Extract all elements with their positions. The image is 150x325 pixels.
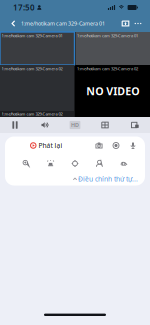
button[interactable]: 1:me/hotikam cam 329-Camera 02 [0,65,74,117]
button[interactable]: Grid layout [90,117,120,133]
staticText: 17:50 [13,2,35,13]
button[interactable]: Stream quality [60,117,90,133]
button[interactable]: NO VIDEO [75,65,150,117]
staticText: NO VIDEO [86,84,139,98]
staticText: 1:me/hotikam cam 329-Camera 02 [1,66,62,71]
button[interactable]: Mute [30,117,60,133]
button[interactable]: Phát lại [30,138,62,152]
button[interactable]: Picture in picture [120,117,150,133]
button[interactable]: 1:me/hotikam cam 329-Camera 01 [0,32,74,65]
button[interactable]: 1:me/hotikam cam 329-Camera 01 [75,32,150,65]
button[interactable]: More options [132,15,144,31]
button[interactable]: Two-way talk [124,138,141,152]
button[interactable]: Cast to device [119,15,132,31]
button[interactable]: Cloud storage [112,156,136,170]
button[interactable]: Expand [67,172,83,185]
button[interactable]: Alarm [38,156,63,170]
button[interactable]: People detection [87,156,112,170]
staticText: 1:me/hotikam cam 329-Camera 02 [1,111,62,117]
button[interactable]: Điều chỉnh thứ tự... [78,172,138,185]
button[interactable]: Record [107,138,124,152]
button[interactable]: Digital zoom [14,156,38,170]
staticText: 1:me/hotikam cam 329-Camera 01 [21,20,105,27]
staticText: Điều chỉnh thứ tự... [78,175,138,183]
staticText: HD [71,121,79,129]
button[interactable]: Pause [0,117,30,133]
button[interactable]: PTZ control [63,156,87,170]
staticText: Phát lại [38,141,62,150]
staticText: 1:me/hotikam cam 329-Camera 01 [77,33,138,38]
staticText: 1:me/hotikam cam 329-Camera 02 [77,66,138,71]
button[interactable]: Back [7,15,20,31]
button[interactable]: Snapshot [90,138,107,152]
staticText: 1:me/hotikam cam 329-Camera 01 [1,33,62,38]
